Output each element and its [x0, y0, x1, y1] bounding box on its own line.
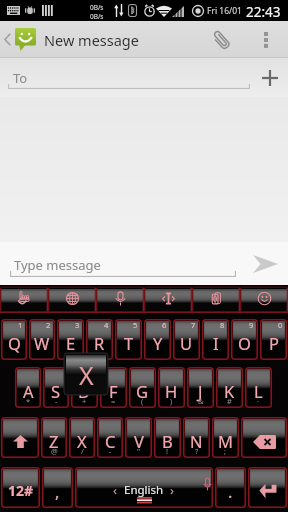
button[interactable]: Y: [144, 319, 171, 360]
staticText: &: [198, 396, 204, 406]
staticText: 22:43: [246, 3, 281, 21]
staticText: A: [23, 380, 34, 402]
staticText: X: [79, 358, 94, 392]
staticText: +: [82, 396, 87, 406]
button[interactable]: X: [69, 417, 95, 458]
staticText: -: [55, 396, 58, 406]
staticText: I: [213, 332, 219, 354]
button[interactable]: D: [71, 367, 98, 408]
button[interactable]: Z: [41, 417, 67, 458]
staticText: K: [224, 380, 235, 402]
button[interactable]: H: [158, 367, 185, 408]
staticText: New message: [44, 30, 139, 50]
button[interactable]: G: [129, 367, 156, 408]
staticText: W: [34, 332, 50, 354]
button[interactable]: K: [216, 367, 243, 408]
staticText: (: [141, 396, 144, 406]
staticText: -: [109, 446, 112, 456]
button[interactable]: U: [173, 319, 200, 360]
staticText: ,: [55, 480, 60, 502]
button[interactable]: F: [100, 367, 127, 408]
button[interactable]: B: [154, 417, 181, 458]
staticText: F: [109, 380, 118, 402]
button[interactable]: Add recipient: [252, 58, 288, 97]
staticText: J: [198, 380, 203, 402]
staticText: To: [13, 69, 28, 87]
staticText: @: [51, 446, 58, 456]
staticText: !: [166, 446, 169, 456]
button[interactable]: J: [187, 367, 214, 408]
button[interactable]: T: [115, 319, 142, 360]
staticText: R: [94, 332, 105, 354]
staticText: *: [26, 396, 31, 406]
button[interactable]: Backspace: [241, 417, 287, 458]
button[interactable]: ,: [42, 467, 73, 508]
staticText: ): [170, 396, 173, 406]
button[interactable]: S: [43, 367, 69, 408]
staticText: E: [66, 332, 76, 354]
button[interactable]: E: [57, 319, 84, 360]
button[interactable]: .: [215, 467, 246, 508]
staticText: C: [105, 430, 116, 452]
staticText: =: [111, 396, 116, 406]
button[interactable]: More options: [252, 21, 280, 58]
button[interactable]: W: [29, 319, 55, 360]
button[interactable]: Handwriting: [0, 286, 48, 313]
staticText: S: [51, 380, 61, 402]
staticText: ;: [224, 446, 227, 456]
staticText: 7: [191, 320, 196, 330]
staticText: ›: [170, 481, 175, 499]
staticText: 2: [46, 320, 51, 330]
staticText: ‹: [113, 481, 118, 499]
staticText: Q: [8, 332, 21, 354]
staticText: ·: [257, 396, 260, 406]
staticText: ": [137, 446, 141, 456]
staticText: X: [77, 430, 87, 452]
staticText: G: [136, 380, 149, 402]
staticText: 9: [249, 320, 254, 330]
button[interactable]: 12#: [1, 467, 40, 508]
button[interactable]: Attach: [205, 21, 237, 58]
staticText: B: [162, 430, 173, 452]
button[interactable]: O: [231, 319, 258, 360]
button[interactable]: Voice input: [96, 286, 144, 313]
staticText: 0: [278, 320, 283, 330]
button[interactable]: C: [97, 417, 123, 458]
staticText: 5: [133, 320, 138, 330]
staticText: .: [228, 480, 233, 502]
staticText: 8: [220, 320, 225, 330]
staticText: T: [124, 332, 134, 354]
button[interactable]: Clipboard: [192, 286, 240, 313]
staticText: ?: [195, 446, 199, 456]
button[interactable]: New message: [0, 21, 145, 58]
staticText: 0B/s: [90, 12, 104, 21]
button[interactable]: L: [245, 367, 272, 408]
button[interactable]: V: [125, 417, 152, 458]
button[interactable]: M: [212, 417, 239, 458]
staticText: 6: [162, 320, 167, 330]
button[interactable]: Enter: [248, 467, 287, 508]
button[interactable]: P: [260, 319, 287, 360]
button[interactable]: N: [183, 417, 210, 458]
staticText: M: [218, 430, 233, 452]
staticText: Type message: [14, 256, 101, 274]
staticText: /: [81, 446, 84, 456]
button[interactable]: Language: [48, 286, 96, 313]
button[interactable]: Q: [1, 319, 27, 360]
staticText: D: [78, 380, 91, 402]
button[interactable]: Cursor: [144, 286, 192, 313]
staticText: Z: [49, 430, 59, 452]
staticText: 4: [104, 320, 109, 330]
staticText: N: [190, 430, 203, 452]
staticText: English: [124, 482, 164, 498]
button[interactable]: A: [15, 367, 41, 408]
button[interactable]: Emoji: [240, 286, 288, 313]
button[interactable]: I: [202, 319, 229, 360]
button[interactable]: R: [86, 319, 113, 360]
button[interactable]: Shift: [1, 417, 39, 458]
staticText: Y: [153, 332, 163, 354]
staticText: 1: [18, 320, 23, 330]
button[interactable]: Space, English: [75, 467, 213, 508]
button[interactable]: Send: [243, 242, 288, 285]
staticText: P: [269, 332, 279, 354]
